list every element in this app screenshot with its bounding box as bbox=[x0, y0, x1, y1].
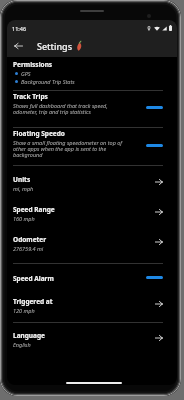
staticText: Units bbox=[13, 175, 31, 184]
staticText: 276759.4 mi bbox=[13, 245, 44, 252]
button[interactable]: Language bbox=[7, 323, 177, 353]
staticText: GPS bbox=[21, 70, 31, 77]
staticText: Triggered at bbox=[13, 297, 53, 306]
button[interactable]: Floating Speedo bbox=[7, 128, 177, 165]
button[interactable]: Track Trips bbox=[7, 91, 177, 127]
staticText: Track Trips bbox=[13, 92, 48, 101]
button[interactable]: Speed Range bbox=[7, 196, 177, 226]
button[interactable]: Units bbox=[7, 166, 177, 196]
staticText: Odometer bbox=[13, 235, 47, 244]
button[interactable]: Odometer bbox=[7, 226, 177, 256]
staticText: 11:46 bbox=[12, 25, 27, 32]
staticText: Speed Range bbox=[13, 205, 55, 214]
staticText: Shows full dashboard that track speed, o… bbox=[13, 102, 108, 116]
staticText: Settings bbox=[37, 40, 73, 52]
staticText: mi, mph bbox=[13, 185, 34, 192]
staticText: Background Trip Stats bbox=[21, 78, 75, 85]
button[interactable]: Triggered at bbox=[7, 286, 177, 316]
staticText: Language bbox=[13, 331, 45, 340]
staticText: 160 mph bbox=[13, 215, 35, 222]
button[interactable]: Speed Alarm bbox=[7, 264, 177, 286]
staticText: Speed Alarm bbox=[13, 274, 54, 283]
staticText: Permissions bbox=[13, 60, 53, 69]
staticText: 120 mph bbox=[13, 307, 35, 314]
staticText: English bbox=[13, 341, 31, 348]
staticText: Floating Speedo bbox=[13, 129, 65, 138]
staticText: Show a small floating speedometer on top… bbox=[13, 139, 123, 159]
button[interactable]: Back bbox=[7, 34, 29, 57]
